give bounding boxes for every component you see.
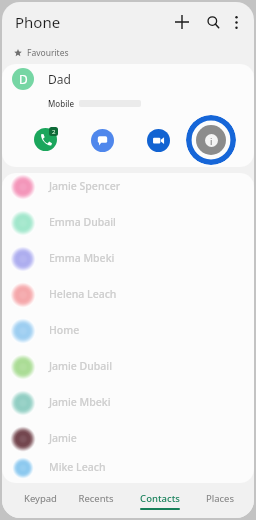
staticText: 2 — [52, 128, 56, 136]
button[interactable]: Helena Leach — [2, 277, 254, 313]
staticText: Jamie Spencer — [49, 179, 121, 193]
button[interactable]: Emma Mbeki — [2, 241, 254, 277]
staticText: Mobile — [48, 98, 75, 109]
button[interactable]: Mike Leach — [2, 457, 254, 479]
button[interactable]: Home — [2, 313, 254, 349]
button[interactable]: Call — [34, 128, 58, 152]
staticText: Phone — [15, 12, 61, 32]
button[interactable]: Jamie — [2, 421, 254, 457]
staticText: Helena Leach — [49, 287, 117, 301]
button[interactable]: Jamie Spencer — [2, 173, 254, 205]
button[interactable]: Video call — [147, 129, 170, 152]
button[interactable]: Message — [91, 129, 114, 152]
button[interactable]: More options — [221, 7, 251, 37]
staticText: D — [19, 71, 28, 87]
staticText: Emma Mbeki — [49, 251, 115, 265]
button[interactable]: Emma Dubail — [2, 205, 254, 241]
staticText: Keypad — [24, 492, 57, 505]
button[interactable]: Places — [192, 483, 248, 518]
button[interactable]: Jamie Mbeki — [2, 385, 254, 421]
staticText: Recents — [78, 492, 114, 505]
button[interactable]: Search — [198, 7, 228, 37]
staticText: Contacts — [140, 492, 180, 505]
button[interactable]: Contact details — [186, 115, 236, 165]
button[interactable]: Recents — [68, 483, 124, 518]
button[interactable]: Contacts — [130, 483, 190, 518]
button[interactable]: D — [2, 64, 254, 167]
staticText: Jamie — [49, 431, 77, 445]
button[interactable]: Jamie Dubail — [2, 349, 254, 385]
staticText: Emma Dubail — [49, 215, 116, 229]
staticText: Places — [206, 492, 234, 505]
staticText: Favourites — [27, 47, 69, 59]
staticText: i — [210, 135, 213, 147]
staticText: Mike Leach — [49, 460, 106, 474]
staticText: Dad — [48, 71, 71, 87]
staticText: Jamie Dubail — [49, 359, 113, 373]
button[interactable]: Keypad — [12, 483, 68, 518]
staticText: Jamie Mbeki — [49, 395, 111, 409]
staticText: Home — [49, 323, 80, 337]
button[interactable]: Add contact — [167, 7, 197, 37]
